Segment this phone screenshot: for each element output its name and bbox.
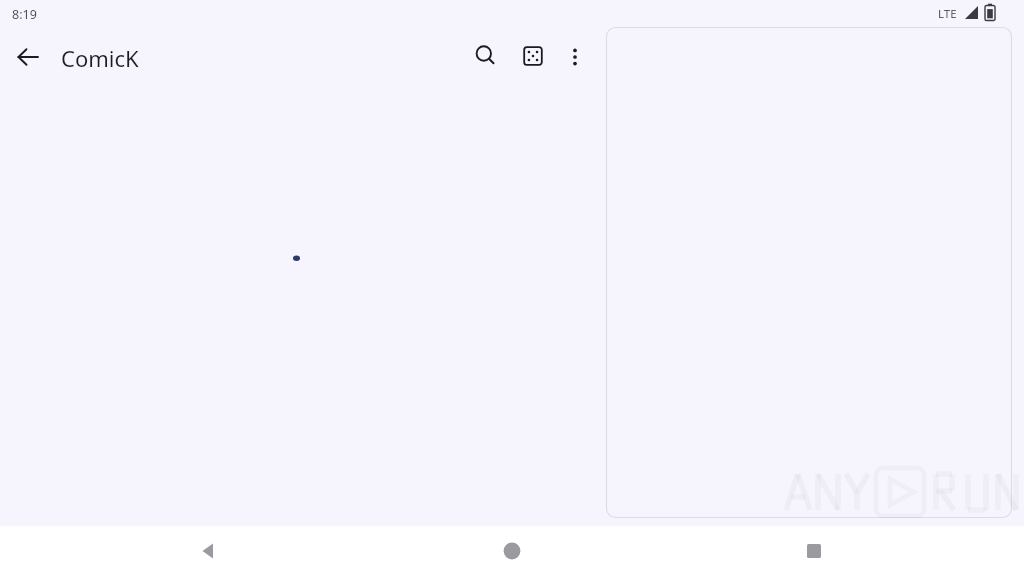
staticText: LTE	[938, 6, 957, 22]
button[interactable]: Home	[488, 528, 536, 574]
button[interactable]: Search	[462, 32, 510, 80]
button[interactable]: Back	[184, 528, 232, 574]
staticText: ComicK	[61, 43, 139, 73]
button[interactable]: More options	[552, 33, 598, 81]
staticText: 8:19	[12, 6, 37, 23]
button[interactable]: Random	[509, 32, 557, 80]
button[interactable]: Recent apps	[790, 528, 838, 574]
button[interactable]: Back	[4, 33, 52, 81]
